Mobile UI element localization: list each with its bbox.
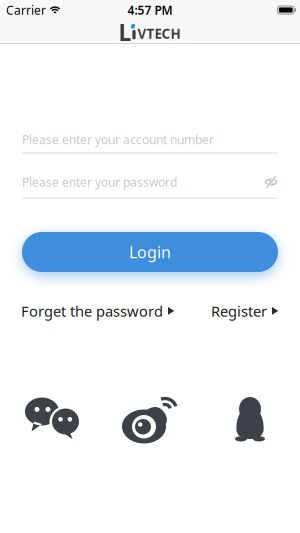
staticText: Please enter your password <box>22 174 177 190</box>
staticText: Carrier <box>6 2 46 18</box>
staticText: L <box>118 17 131 47</box>
button[interactable]: Forget the password <box>21 301 175 321</box>
staticText: Login <box>129 241 171 263</box>
button[interactable]: Log in with Weibo <box>122 397 178 443</box>
button[interactable]: Login <box>22 232 278 272</box>
button[interactable]: Show password <box>264 175 278 188</box>
staticText: Please enter your account number <box>22 131 214 147</box>
button[interactable]: Log in with WeChat <box>25 397 79 441</box>
staticText: Forget the password <box>21 301 163 321</box>
staticText: VTECH <box>137 25 180 42</box>
button[interactable]: Register <box>211 301 279 321</box>
staticText: 4:57 PM <box>127 2 172 18</box>
staticText: Register <box>211 301 267 321</box>
button[interactable]: Log in with QQ <box>235 397 265 442</box>
